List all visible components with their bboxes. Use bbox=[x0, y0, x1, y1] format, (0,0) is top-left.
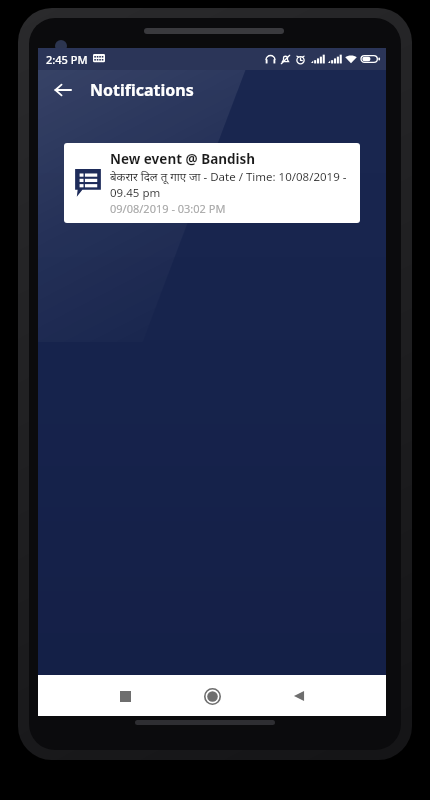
button[interactable]: Home bbox=[192, 676, 232, 716]
staticText: 09/08/2019 - 03:02 PM bbox=[110, 201, 226, 216]
staticText: 2:45 PM bbox=[46, 52, 88, 67]
staticText: बेकरार दिल तू गाए जा - Date / Time: 10/0… bbox=[110, 169, 352, 200]
button[interactable]: New event @ Bandish bbox=[64, 143, 360, 223]
button[interactable]: Back bbox=[46, 73, 80, 107]
staticText: Notifications bbox=[90, 79, 194, 101]
button[interactable]: Back bbox=[279, 676, 319, 716]
staticText: New event @ Bandish bbox=[110, 150, 256, 168]
button[interactable]: Recent apps bbox=[105, 676, 145, 716]
